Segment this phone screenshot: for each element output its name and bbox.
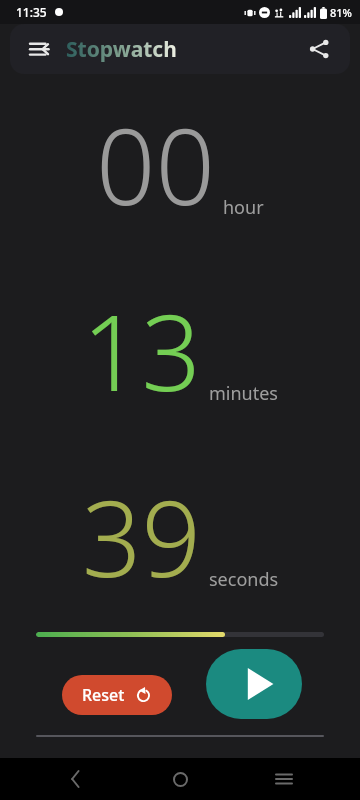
staticText: 11:35: [16, 4, 47, 20]
button[interactable]: Start: [206, 649, 302, 719]
staticText: Stopwatch: [66, 35, 177, 64]
button[interactable]: Open navigation menu: [20, 30, 58, 68]
staticText: hour: [223, 195, 264, 220]
staticText: 39: [82, 466, 201, 608]
staticText: 81%: [330, 5, 352, 20]
staticText: 00: [96, 94, 215, 236]
button[interactable]: Home: [152, 758, 208, 800]
button[interactable]: Back: [48, 758, 104, 800]
button[interactable]: Recent apps: [256, 758, 312, 800]
button[interactable]: Reset: [62, 675, 172, 715]
staticText: Reset: [82, 684, 125, 706]
button[interactable]: Share: [300, 30, 338, 68]
staticText: seconds: [209, 567, 279, 592]
staticText: 13: [82, 280, 201, 422]
staticText: minutes: [209, 381, 278, 406]
